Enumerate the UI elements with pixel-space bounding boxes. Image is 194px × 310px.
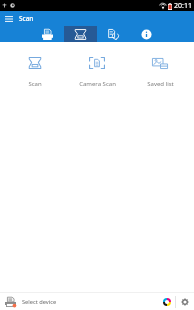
button[interactable]: Fax bbox=[97, 26, 130, 42]
staticText: 20:11 bbox=[174, 1, 192, 11]
button[interactable]: Select device bbox=[0, 293, 158, 310]
staticText: Select device bbox=[22, 298, 57, 306]
button[interactable]: Print bbox=[31, 26, 64, 42]
button[interactable]: Camera Scan bbox=[69, 57, 125, 88]
staticText: Camera Scan bbox=[79, 80, 116, 88]
staticText: Scan bbox=[28, 80, 42, 88]
button[interactable]: Information bbox=[130, 26, 163, 42]
staticText: Saved list bbox=[147, 80, 174, 88]
button[interactable]: Saved list bbox=[132, 57, 188, 88]
button[interactable]: Open navigation menu bbox=[2, 11, 15, 26]
button[interactable]: Settings bbox=[176, 293, 193, 310]
staticText: Scan bbox=[19, 14, 34, 23]
button[interactable]: Scan bbox=[7, 57, 63, 88]
button[interactable]: Scan bbox=[64, 26, 97, 42]
button[interactable]: Ink levels bbox=[158, 293, 175, 310]
